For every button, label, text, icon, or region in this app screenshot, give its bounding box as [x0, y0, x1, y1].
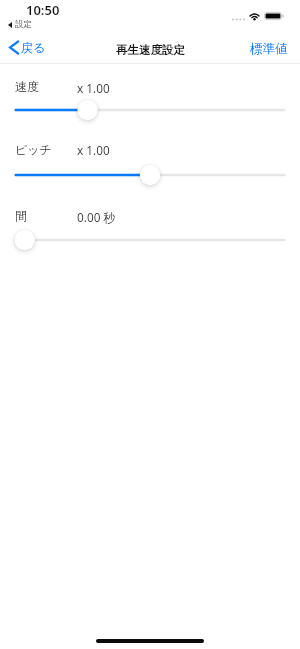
- staticText: ピッチ: [15, 142, 52, 157]
- button[interactable]: 戻る: [0, 37, 56, 58]
- staticText: 設定: [15, 19, 32, 30]
- staticText: 速度: [15, 79, 39, 94]
- staticText: 戻る: [21, 40, 46, 55]
- staticText: 10:50: [26, 1, 60, 19]
- staticText: 0.00 秒: [77, 209, 116, 225]
- button[interactable]: ピッチ slider: [0, 163, 300, 187]
- staticText: x 1.00: [77, 80, 110, 96]
- button[interactable]: 設定に戻る: [8, 19, 32, 30]
- button[interactable]: 標準値: [240, 36, 300, 62]
- button[interactable]: 速度 slider: [0, 98, 300, 122]
- staticText: 再生速度設定: [116, 43, 185, 57]
- staticText: 間: [15, 208, 27, 223]
- staticText: x 1.00: [77, 142, 110, 158]
- button[interactable]: 間 slider: [0, 228, 300, 252]
